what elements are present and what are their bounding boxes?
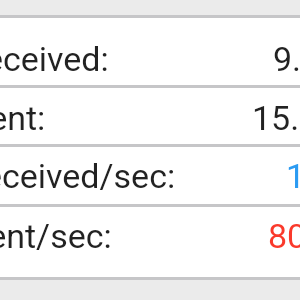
- staticText: Sent/sec:: [0, 216, 112, 256]
- staticText: 9.5 MB: [273, 39, 300, 79]
- staticText: 15.2 MB: [252, 98, 300, 138]
- staticText: 1.2 KB: [286, 156, 300, 196]
- staticText: Received:: [0, 39, 109, 79]
- staticText: Sent:: [0, 98, 46, 138]
- staticText: 804 B: [268, 216, 300, 256]
- staticText: Received/sec:: [0, 156, 176, 196]
